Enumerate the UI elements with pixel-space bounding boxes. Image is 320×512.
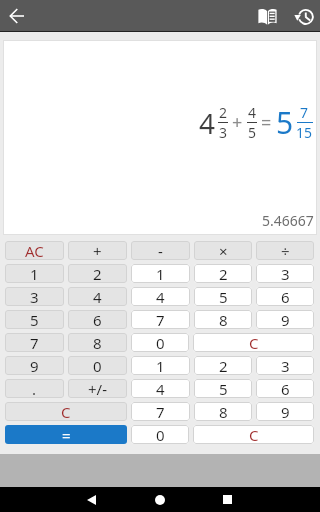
staticText: C bbox=[249, 333, 259, 352]
button[interactable]: 9 bbox=[5, 356, 64, 375]
button[interactable]: 3 bbox=[5, 287, 64, 306]
staticText: C bbox=[61, 402, 71, 421]
staticText: 5 bbox=[219, 379, 228, 398]
staticText: 4 bbox=[156, 379, 165, 398]
staticText: 4 bbox=[199, 104, 216, 142]
staticText: 1 bbox=[156, 264, 165, 283]
staticText: ÷ bbox=[281, 241, 290, 260]
staticText: 1 bbox=[156, 356, 165, 375]
button[interactable]: 4 bbox=[131, 379, 190, 398]
button[interactable]: 1 bbox=[131, 264, 190, 283]
button[interactable]: Expression display bbox=[3, 40, 317, 235]
button[interactable]: Back bbox=[1, 0, 32, 31]
staticText: AC bbox=[25, 241, 44, 260]
button[interactable]: 5 bbox=[5, 310, 64, 329]
staticText: 9 bbox=[30, 356, 39, 375]
staticText: 8 bbox=[93, 333, 102, 352]
button[interactable]: 5 bbox=[194, 287, 252, 306]
staticText: 7 bbox=[30, 333, 39, 352]
staticText: 0 bbox=[156, 333, 165, 352]
staticText: 3 bbox=[30, 287, 39, 306]
staticText: 5 bbox=[219, 287, 228, 306]
staticText: 3 bbox=[281, 356, 290, 375]
button[interactable]: 8 bbox=[194, 402, 252, 421]
button[interactable]: Back bbox=[71, 487, 111, 512]
button[interactable]: . bbox=[5, 379, 64, 398]
staticText: 8 bbox=[219, 402, 228, 421]
button[interactable]: 0 bbox=[131, 425, 189, 444]
staticText: 5 bbox=[276, 102, 294, 143]
button[interactable]: - bbox=[131, 241, 190, 260]
staticText: 6 bbox=[93, 310, 102, 329]
staticText: = bbox=[62, 425, 71, 444]
staticText: 8 bbox=[219, 310, 228, 329]
button[interactable]: 0 bbox=[68, 356, 127, 375]
button[interactable]: 6 bbox=[256, 379, 314, 398]
button[interactable]: 2 bbox=[194, 264, 252, 283]
staticText: 3 bbox=[281, 264, 290, 283]
staticText: 4 bbox=[93, 287, 102, 306]
button[interactable]: C bbox=[193, 425, 314, 444]
button[interactable]: C bbox=[5, 402, 127, 421]
button[interactable]: 4 bbox=[68, 287, 127, 306]
staticText: 0 bbox=[93, 356, 102, 375]
button[interactable]: History bbox=[288, 1, 318, 31]
staticText: 2 bbox=[219, 264, 228, 283]
staticText: 7 bbox=[300, 103, 309, 122]
staticText: × bbox=[219, 241, 228, 260]
button[interactable]: 8 bbox=[194, 310, 252, 329]
button[interactable]: Reference bbox=[252, 1, 282, 31]
button[interactable]: 7 bbox=[131, 402, 190, 421]
button[interactable]: 3 bbox=[256, 264, 314, 283]
staticText: 2 bbox=[219, 356, 228, 375]
button[interactable]: 6 bbox=[68, 310, 127, 329]
button[interactable]: 2 bbox=[68, 264, 127, 283]
button[interactable]: 9 bbox=[256, 310, 314, 329]
button[interactable]: = bbox=[5, 425, 127, 444]
staticText: 3 bbox=[219, 123, 228, 142]
button[interactable]: +/- bbox=[68, 379, 127, 398]
staticText: 1 bbox=[30, 264, 39, 283]
button[interactable]: 1 bbox=[131, 356, 190, 375]
staticText: + bbox=[232, 110, 243, 135]
button[interactable]: 4 bbox=[131, 287, 190, 306]
staticText: 2 bbox=[219, 103, 228, 122]
staticText: 4 bbox=[156, 287, 165, 306]
button[interactable]: 2 bbox=[194, 356, 252, 375]
staticText: C bbox=[249, 425, 259, 444]
button[interactable]: 9 bbox=[256, 402, 314, 421]
staticText: 5.46667 bbox=[262, 211, 314, 230]
button[interactable]: Home bbox=[140, 487, 180, 512]
staticText: 6 bbox=[281, 379, 290, 398]
staticText: 2 bbox=[93, 264, 102, 283]
button[interactable]: × bbox=[194, 241, 252, 260]
button[interactable]: 1 bbox=[5, 264, 64, 283]
staticText: 6 bbox=[281, 287, 290, 306]
staticText: 5 bbox=[30, 310, 39, 329]
staticText: +/- bbox=[88, 379, 107, 398]
staticText: . bbox=[32, 379, 37, 398]
staticText: 15 bbox=[296, 123, 313, 142]
button[interactable]: 7 bbox=[131, 310, 190, 329]
staticText: + bbox=[93, 241, 102, 260]
staticText: = bbox=[261, 110, 272, 135]
button[interactable]: + bbox=[68, 241, 127, 260]
staticText: 5 bbox=[248, 123, 257, 142]
button[interactable]: 0 bbox=[131, 333, 189, 352]
button[interactable]: 3 bbox=[256, 356, 314, 375]
button[interactable]: 5 bbox=[194, 379, 252, 398]
staticText: - bbox=[158, 241, 163, 260]
button[interactable]: 8 bbox=[68, 333, 127, 352]
staticText: 9 bbox=[281, 310, 290, 329]
staticText: 9 bbox=[281, 402, 290, 421]
button[interactable]: ÷ bbox=[256, 241, 314, 260]
button[interactable]: C bbox=[193, 333, 314, 352]
staticText: 4 bbox=[248, 103, 257, 122]
button[interactable]: 6 bbox=[256, 287, 314, 306]
staticText: 7 bbox=[156, 310, 165, 329]
button[interactable]: AC bbox=[5, 241, 64, 260]
staticText: 0 bbox=[156, 425, 165, 444]
button[interactable]: 7 bbox=[5, 333, 64, 352]
button[interactable]: Recents bbox=[207, 487, 247, 512]
staticText: 7 bbox=[156, 402, 165, 421]
